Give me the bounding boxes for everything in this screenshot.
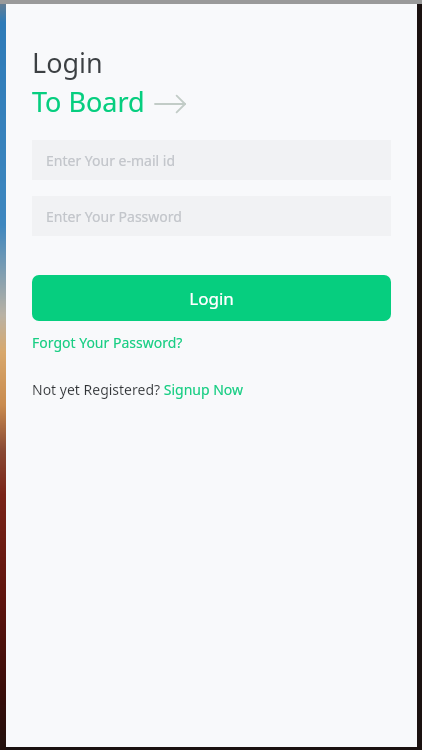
button[interactable]: Enter Your e-mail id [32,140,391,180]
button[interactable]: Not yet Registered? Signup Now [32,377,244,402]
staticText: Forgot Your Password? [32,333,183,352]
staticText: Enter Your e-mail id [46,151,176,170]
staticText: Not yet Registered? Signup Now [32,380,244,399]
staticText: To Board [32,83,145,120]
button[interactable]: Login [32,275,391,321]
other: Go to board [155,94,185,114]
staticText: Login [189,287,234,310]
button[interactable]: Forgot Your Password? [32,330,183,355]
staticText: Login [32,44,103,81]
button[interactable]: Enter Your Password [32,196,391,236]
staticText: Enter Your Password [46,207,182,226]
